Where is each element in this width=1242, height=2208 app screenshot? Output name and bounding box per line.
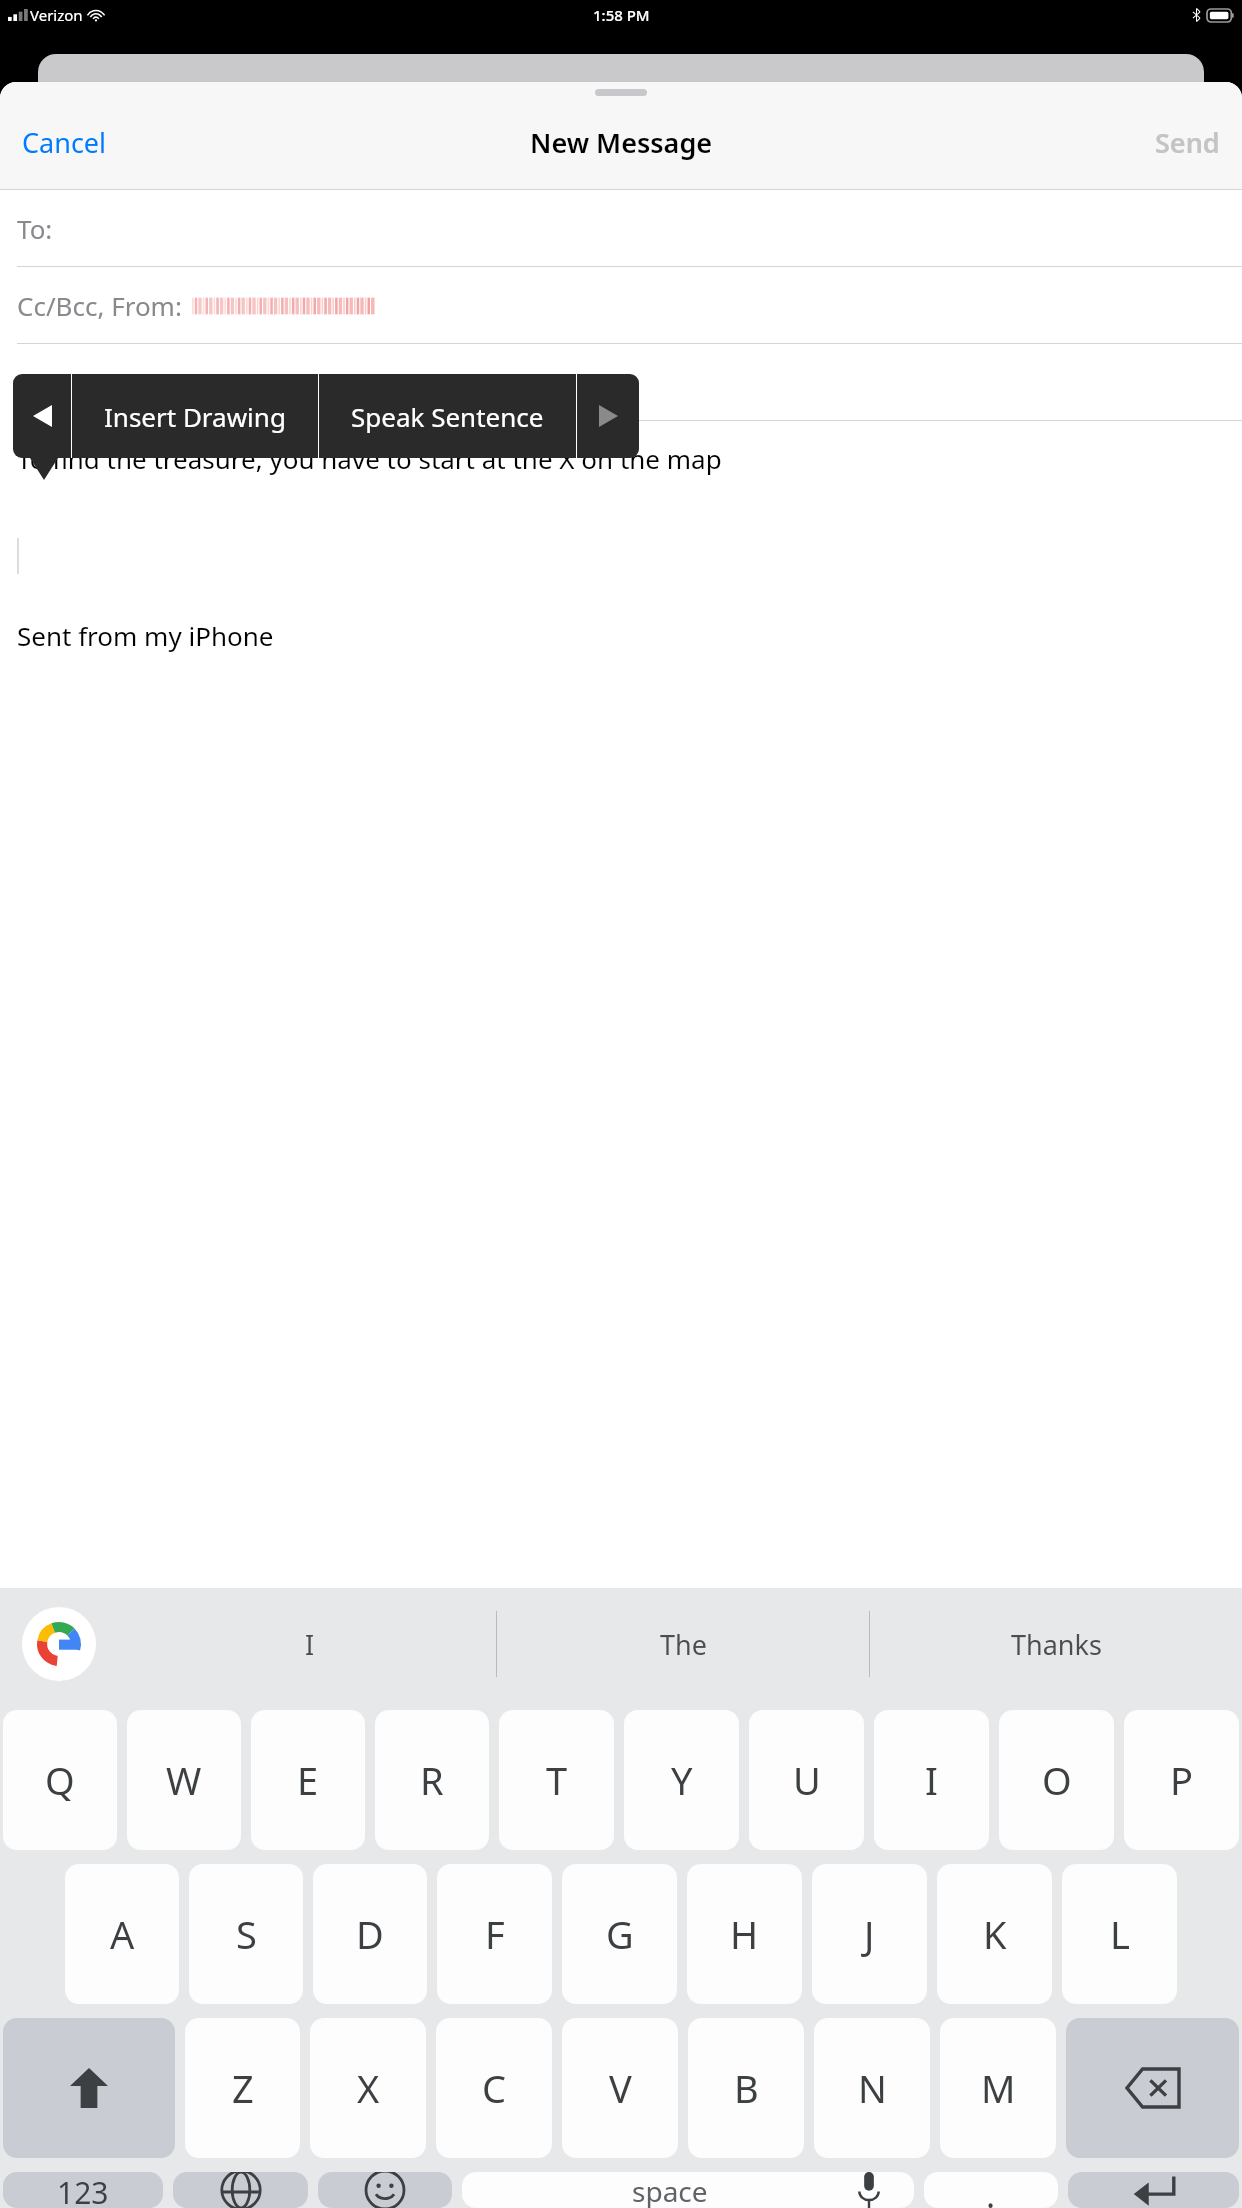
staticText: Send (1155, 124, 1220, 161)
staticText: Z (232, 2062, 254, 2114)
button[interactable]: Shift (3, 2018, 175, 2158)
button[interactable]: Z (185, 2018, 300, 2158)
button[interactable]: C (436, 2018, 552, 2158)
staticText: A (110, 1908, 135, 1960)
staticText: To: (17, 211, 53, 246)
staticText: M (981, 2062, 1016, 2114)
staticText: T (546, 1754, 568, 1806)
button[interactable]: Enter (1068, 2172, 1239, 2208)
staticText: R (420, 1754, 444, 1806)
button[interactable]: Emoji (318, 2172, 452, 2208)
staticText: W (166, 1754, 202, 1806)
button[interactable]: M (940, 2018, 1056, 2158)
staticText: Q (45, 1754, 75, 1806)
staticText: X (357, 2062, 380, 2114)
button[interactable]: Next (577, 374, 639, 458)
button[interactable]: Backspace (1066, 2018, 1239, 2158)
button[interactable]: space (462, 2172, 914, 2208)
staticText: To find the treasure, you have to start … (17, 441, 722, 476)
staticText: space (632, 2172, 708, 2208)
button[interactable]: Cancel (0, 114, 129, 171)
staticText: J (864, 1908, 875, 1960)
staticText: Insert Drawing (104, 399, 286, 434)
button[interactable]: Previous (13, 374, 71, 458)
button[interactable]: I (874, 1710, 989, 1850)
staticText: V (609, 2062, 632, 2114)
staticText: D (356, 1908, 384, 1960)
button[interactable]: Send (1133, 114, 1242, 171)
staticText: E (297, 1754, 319, 1806)
button[interactable]: Thanks (870, 1588, 1242, 1700)
button[interactable]: G (562, 1864, 677, 2004)
staticText: Thanks (1011, 1626, 1102, 1663)
button[interactable]: A (65, 1864, 179, 2004)
button[interactable]: R (375, 1710, 489, 1850)
staticText: K (983, 1908, 1007, 1960)
button[interactable]: V (562, 2018, 678, 2158)
button[interactable]: The (497, 1588, 869, 1700)
staticText: Y (671, 1754, 693, 1806)
staticText: P (1170, 1754, 1193, 1806)
button[interactable]: U (749, 1710, 864, 1850)
staticText: H (730, 1908, 759, 1960)
button[interactable]: Subject: (0, 344, 1242, 420)
staticText: New Message (530, 124, 713, 161)
staticText: I (925, 1754, 938, 1806)
button[interactable]: Y (624, 1710, 739, 1850)
staticText: B (734, 2062, 759, 2114)
button[interactable]: 123 (3, 2172, 163, 2208)
staticText: O (1042, 1754, 1072, 1806)
button[interactable]: E (251, 1710, 365, 1850)
button[interactable]: P (1124, 1710, 1239, 1850)
button[interactable]: . (924, 2172, 1058, 2208)
staticText: The (660, 1626, 707, 1663)
staticText: Cc/Bcc, From: (17, 288, 182, 323)
staticText: Cancel (22, 124, 107, 161)
button[interactable]: Insert Drawing (72, 374, 318, 458)
staticText: I (305, 1626, 315, 1663)
button[interactable]: J (812, 1864, 927, 2004)
button[interactable]: N (814, 2018, 930, 2158)
staticText: Sent from my iPhone (17, 618, 274, 653)
button[interactable]: To: (0, 190, 1242, 266)
staticText: S (236, 1908, 257, 1960)
staticText: F (485, 1908, 505, 1960)
staticText: U (793, 1754, 821, 1806)
button[interactable]: Google (22, 1607, 96, 1681)
staticText: C (482, 2062, 507, 2114)
button[interactable]: K (937, 1864, 1052, 2004)
button[interactable]: D (313, 1864, 427, 2004)
staticText: 1:58 PM (593, 5, 650, 25)
button[interactable]: F (437, 1864, 552, 2004)
staticText: . (986, 2172, 996, 2208)
button[interactable]: H (687, 1864, 802, 2004)
button[interactable]: L (1062, 1864, 1177, 2004)
button[interactable]: S (189, 1864, 303, 2004)
button[interactable]: Q (3, 1710, 117, 1850)
staticText: G (606, 1908, 634, 1960)
staticText: 123 (57, 2172, 109, 2208)
button[interactable]: Change language (173, 2172, 308, 2208)
button[interactable]: X (310, 2018, 426, 2158)
button[interactable]: W (127, 1710, 241, 1850)
staticText: Speak Sentence (351, 399, 544, 434)
button[interactable]: B (688, 2018, 804, 2158)
staticText: L (1110, 1908, 1130, 1960)
button[interactable]: T (499, 1710, 614, 1850)
button[interactable]: Speak Sentence (319, 374, 576, 458)
staticText: Verizon (30, 5, 83, 25)
button[interactable]: Cc/Bcc, From: (0, 267, 1242, 343)
staticText: Subject: (17, 365, 114, 400)
button[interactable]: O (999, 1710, 1114, 1850)
button[interactable]: I (124, 1588, 496, 1700)
staticText: N (858, 2062, 887, 2114)
